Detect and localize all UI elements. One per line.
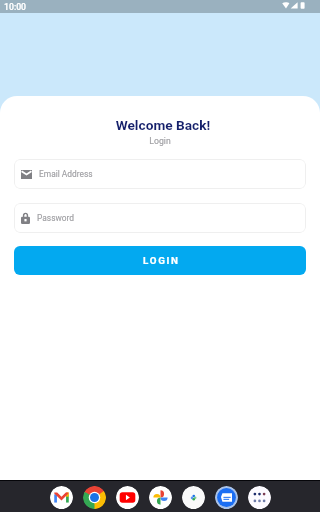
- button[interactable]: Chrome: [83, 486, 106, 509]
- button[interactable]: Assistant: [182, 486, 205, 509]
- staticText: Welcome Back!: [3, 117, 320, 133]
- button[interactable]: YouTube: [116, 486, 139, 509]
- button[interactable]: All apps: [248, 486, 271, 509]
- staticText: LOGIN: [143, 255, 180, 266]
- staticText: Email Address: [39, 169, 93, 179]
- staticText: Login: [0, 136, 320, 146]
- staticText: 10:00: [4, 2, 27, 12]
- staticText: Password: [37, 213, 75, 223]
- button[interactable]: Email Address: [14, 159, 306, 189]
- button[interactable]: Photos: [149, 486, 172, 509]
- button[interactable]: LOGIN: [14, 246, 306, 275]
- button[interactable]: Gmail: [50, 486, 73, 509]
- button[interactable]: Password: [14, 203, 306, 233]
- button[interactable]: Messages: [215, 486, 238, 509]
